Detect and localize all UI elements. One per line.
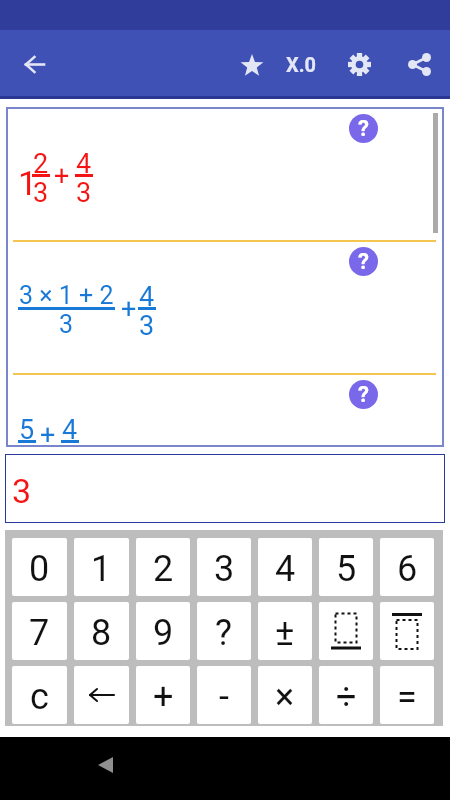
staticText: 3 [139, 310, 155, 336]
staticText: 3 [33, 177, 49, 203]
staticText: 3 [76, 177, 92, 203]
button[interactable] [408, 53, 431, 76]
button[interactable]: = [380, 666, 434, 724]
staticText: 1 [91, 548, 112, 590]
staticText: 3 × 1 + 2 [19, 281, 114, 307]
staticText: + [121, 293, 137, 325]
staticText: ? [358, 382, 369, 408]
staticText: 0 [29, 548, 50, 590]
staticText: 4 [62, 414, 78, 440]
staticText: 4 [76, 148, 92, 174]
button[interactable] [25, 56, 45, 73]
button[interactable]: × [258, 666, 312, 724]
staticText: 8 [91, 612, 112, 654]
staticText: 2 [153, 548, 174, 590]
staticText: 3 [214, 548, 235, 590]
button[interactable]: + [136, 666, 190, 724]
staticText: × [275, 676, 295, 718]
staticText: 4 [275, 548, 296, 590]
button[interactable]: ± [258, 602, 312, 660]
button[interactable]: ? [349, 114, 378, 143]
staticText: c [30, 676, 49, 718]
button[interactable]: 4 [258, 538, 312, 596]
staticText: ? [215, 612, 233, 654]
button[interactable]: 0 [12, 538, 67, 596]
button[interactable]: 7 [12, 602, 67, 660]
staticText: - [219, 676, 229, 718]
staticText: 3 [12, 471, 32, 511]
button[interactable]: 6 [380, 538, 434, 596]
staticText: + [40, 419, 56, 447]
button[interactable]: 9 [136, 602, 190, 660]
staticText: 4 [139, 281, 155, 307]
staticText: 2 [33, 148, 49, 174]
staticText: 5 [19, 414, 35, 440]
button[interactable]: ? [349, 247, 378, 276]
button[interactable] [348, 53, 371, 76]
button[interactable] [74, 666, 129, 724]
staticText: X.0 [286, 53, 317, 76]
button[interactable]: ? [349, 380, 378, 409]
staticText: ± [275, 612, 295, 654]
staticText: 1 [18, 163, 32, 203]
button[interactable]: 1 [74, 538, 129, 596]
staticText: ? [358, 116, 369, 142]
button[interactable]: c [12, 666, 67, 724]
button[interactable] [319, 602, 373, 660]
staticText: 6 [397, 548, 418, 590]
button[interactable]: 2 [136, 538, 190, 596]
staticText: 3 [59, 310, 74, 336]
button[interactable] [240, 53, 264, 77]
staticText: ÷ [336, 676, 357, 718]
staticText: 5 [336, 548, 357, 590]
button[interactable]: 8 [74, 602, 129, 660]
staticText: + [153, 676, 174, 718]
staticText: 7 [29, 612, 50, 654]
button[interactable]: - [197, 666, 251, 724]
staticText: 9 [153, 612, 174, 654]
button[interactable]: 3 [197, 538, 251, 596]
button[interactable] [380, 602, 434, 660]
staticText: ? [358, 249, 369, 275]
button[interactable]: 5 [319, 538, 373, 596]
button[interactable]: ÷ [319, 666, 373, 724]
staticText: + [54, 160, 70, 192]
staticText: = [397, 676, 417, 718]
button[interactable]: X.0 [286, 53, 317, 76]
button[interactable]: ? [197, 602, 251, 660]
button[interactable] [98, 757, 113, 773]
